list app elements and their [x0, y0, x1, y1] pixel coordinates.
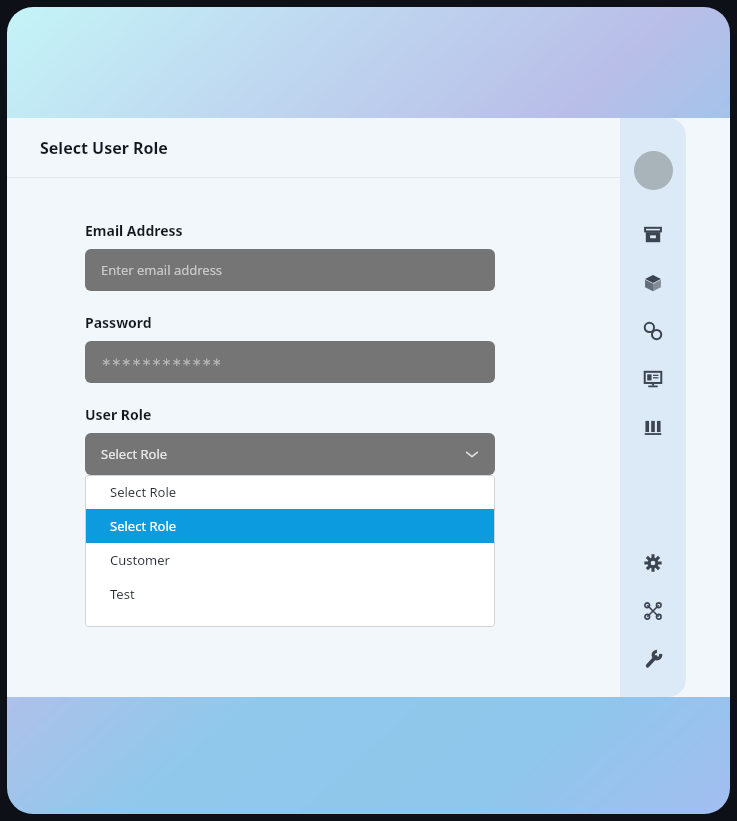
- staticText: Customer: [110, 551, 170, 569]
- button[interactable]: Settings: [636, 546, 670, 580]
- staticText: User Role: [85, 405, 152, 424]
- button[interactable]: Nodes: [636, 594, 670, 628]
- button[interactable]: Package: [636, 266, 670, 300]
- button[interactable]: Select Role: [85, 509, 495, 543]
- staticText: Password: [85, 313, 152, 332]
- staticText: Email Address: [85, 221, 183, 240]
- staticText: Select User Role: [40, 137, 168, 159]
- button[interactable]: Enter email address: [85, 249, 495, 291]
- button[interactable]: Tools: [636, 642, 670, 676]
- button[interactable]: Customer: [85, 543, 495, 577]
- staticText: Select Role: [110, 483, 177, 501]
- staticText: ∗∗∗∗∗∗∗∗∗∗∗∗: [101, 355, 222, 369]
- staticText: Enter email address: [101, 261, 223, 279]
- button[interactable]: Profile: [634, 151, 673, 190]
- button[interactable]: Columns: [636, 410, 670, 444]
- staticText: Select Role: [101, 445, 168, 463]
- button[interactable]: Select Role: [85, 475, 495, 509]
- button[interactable]: Archive: [636, 218, 670, 252]
- staticText: Test: [110, 585, 135, 603]
- button[interactable]: ∗∗∗∗∗∗∗∗∗∗∗∗: [85, 341, 495, 383]
- button[interactable]: Test: [85, 577, 495, 611]
- button[interactable]: Display: [636, 362, 670, 396]
- staticText: Select Role: [110, 517, 177, 535]
- button[interactable]: Select Role: [85, 433, 495, 475]
- button[interactable]: Links: [636, 314, 670, 348]
